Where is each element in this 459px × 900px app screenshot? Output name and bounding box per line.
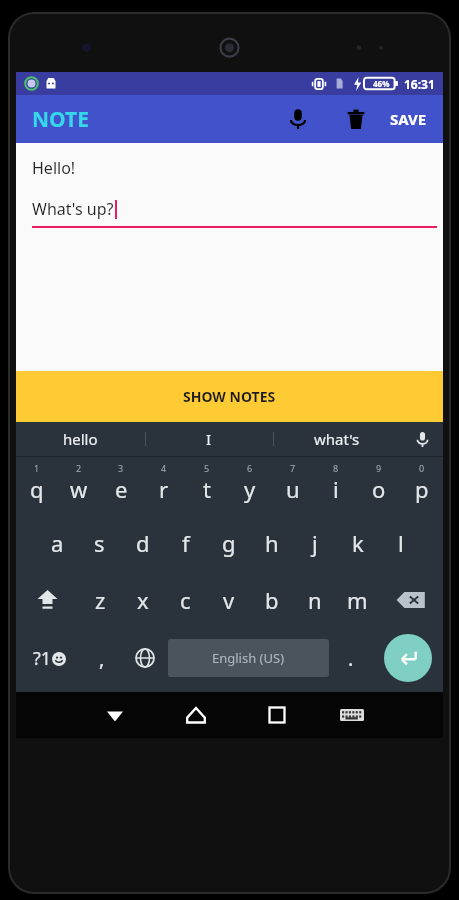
button[interactable]: 4 — [142, 457, 185, 514]
button[interactable]: 3 — [100, 457, 142, 514]
staticText: x — [137, 585, 149, 615]
staticText: k — [352, 528, 364, 558]
staticText: . — [348, 645, 354, 672]
staticText: 46% — [373, 78, 390, 89]
button[interactable]: d — [121, 514, 164, 571]
button[interactable]: k — [336, 514, 379, 571]
staticText: hello — [63, 429, 98, 449]
button[interactable]: Hello! — [16, 143, 443, 371]
staticText: r — [159, 474, 169, 504]
staticText: g — [222, 528, 236, 558]
button[interactable]: what's — [273, 422, 401, 456]
button[interactable]: b — [250, 571, 293, 628]
staticText: a — [51, 528, 64, 558]
button[interactable]: Switch keyboard — [317, 692, 386, 738]
staticText: y — [244, 474, 256, 504]
staticText: t — [203, 474, 211, 504]
staticText: z — [95, 585, 106, 615]
button[interactable]: f — [164, 514, 207, 571]
staticText: h — [265, 528, 279, 558]
staticText: b — [265, 585, 279, 615]
button[interactable]: 6 — [228, 457, 271, 514]
staticText: 0 — [419, 462, 425, 474]
button[interactable]: 9 — [357, 457, 400, 514]
button[interactable]: v — [207, 571, 250, 628]
staticText: what's — [314, 429, 360, 449]
button[interactable]: Voice input — [276, 97, 320, 141]
button[interactable]: 1 — [16, 457, 58, 514]
button[interactable]: ?1 — [16, 628, 83, 688]
staticText: w — [70, 474, 88, 504]
button[interactable]: Delete — [334, 97, 378, 141]
button[interactable]: z — [79, 571, 121, 628]
staticText: Hello! — [32, 157, 76, 179]
staticText: 7 — [290, 462, 296, 474]
button[interactable]: Home — [155, 692, 236, 738]
staticText: n — [308, 585, 322, 615]
button[interactable]: NOTE — [28, 101, 93, 138]
staticText: 9 — [376, 462, 382, 474]
button[interactable]: a — [36, 514, 78, 571]
staticText: c — [180, 585, 191, 615]
button[interactable]: c — [164, 571, 207, 628]
button[interactable]: English (US) — [168, 639, 329, 677]
staticText: o — [372, 474, 386, 504]
staticText: d — [136, 528, 150, 558]
button[interactable]: Recent apps — [236, 692, 317, 738]
button[interactable]: SHOW NOTES — [16, 371, 443, 422]
staticText: p — [415, 474, 429, 504]
button[interactable]: m — [336, 571, 379, 628]
button[interactable]: j — [293, 514, 336, 571]
staticText: e — [115, 474, 128, 504]
staticText: 6 — [247, 462, 253, 474]
button[interactable]: Voice typing — [401, 422, 443, 456]
button[interactable]: x — [121, 571, 164, 628]
button[interactable]: Change language — [121, 628, 168, 688]
button[interactable]: Backspace — [379, 571, 443, 628]
button[interactable]: 7 — [271, 457, 314, 514]
button[interactable]: hello — [16, 422, 145, 456]
staticText: j — [312, 528, 318, 558]
button[interactable]: 2 — [58, 457, 100, 514]
staticText: 4 — [161, 462, 167, 474]
staticText: English (US) — [212, 649, 285, 667]
button[interactable]: , — [83, 628, 121, 688]
button[interactable]: 0 — [400, 457, 443, 514]
staticText: I — [206, 429, 212, 449]
staticText: SAVE — [390, 109, 427, 129]
staticText: 3 — [118, 462, 124, 474]
button[interactable]: g — [207, 514, 250, 571]
staticText: 1 — [34, 462, 40, 474]
button[interactable]: n — [293, 571, 336, 628]
button[interactable]: Enter — [384, 634, 432, 682]
button[interactable]: . — [329, 628, 372, 688]
staticText: i — [333, 474, 339, 504]
staticText: m — [347, 585, 368, 615]
button[interactable]: Shift — [16, 571, 79, 628]
button[interactable]: 8 — [314, 457, 357, 514]
button[interactable]: l — [379, 514, 422, 571]
staticText: v — [223, 585, 235, 615]
staticText: ?1 — [33, 646, 52, 671]
staticText: 8 — [333, 462, 339, 474]
staticText: , — [99, 645, 105, 672]
staticText: f — [182, 528, 190, 558]
staticText: SHOW NOTES — [183, 387, 276, 406]
button[interactable]: I — [145, 422, 273, 456]
staticText: 5 — [204, 462, 210, 474]
staticText: l — [398, 528, 404, 558]
staticText: 16:31 — [404, 76, 435, 92]
staticText: s — [94, 528, 105, 558]
button[interactable]: 5 — [185, 457, 228, 514]
staticText: q — [30, 474, 44, 504]
button[interactable]: s — [78, 514, 121, 571]
button[interactable]: h — [250, 514, 293, 571]
button[interactable]: SAVE — [386, 99, 431, 139]
button[interactable]: Hide keyboard — [74, 692, 155, 738]
staticText: u — [286, 474, 300, 504]
staticText: What's up? — [32, 198, 114, 220]
staticText: 2 — [76, 462, 82, 474]
